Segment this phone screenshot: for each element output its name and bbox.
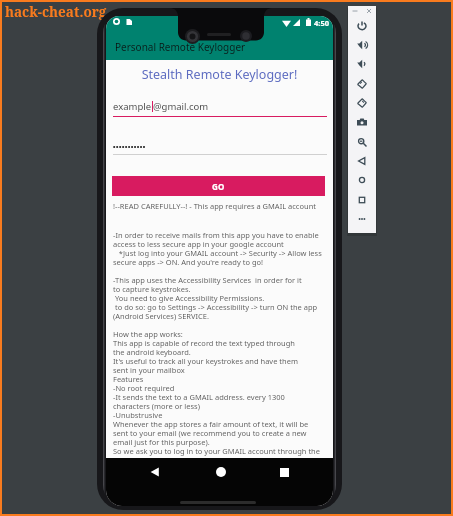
button[interactable]: Overview [348, 190, 376, 209]
staticText: @gmail.com [153, 100, 209, 113]
staticText: example [113, 100, 152, 113]
button[interactable]: Power [348, 16, 376, 35]
button[interactable]: Back [142, 459, 168, 485]
button[interactable]: example [113, 100, 327, 120]
button[interactable]: Recent apps [271, 459, 297, 485]
button[interactable]: Home [348, 170, 376, 189]
button[interactable]: Minimize [352, 8, 358, 14]
button[interactable]: More [348, 209, 376, 228]
button[interactable]: Personal Remote Keylogger [115, 40, 246, 54]
staticText: 4:50 [314, 18, 329, 28]
button[interactable]: Volume up [348, 35, 376, 54]
staticText: !--READ CAREFULLY--! - This app requires… [113, 201, 331, 211]
button[interactable]: GO [112, 176, 325, 196]
staticText: GO [212, 181, 225, 192]
button[interactable] [113, 139, 327, 159]
button[interactable]: Home [208, 459, 234, 485]
button[interactable]: Volume down [348, 54, 376, 73]
button[interactable]: Rotate right [348, 93, 376, 112]
button[interactable]: Back [348, 151, 376, 170]
staticText: Stealth Remote Keylogger! [106, 66, 333, 83]
button[interactable]: Screenshot [348, 112, 376, 131]
staticText: hack-cheat.org [5, 3, 107, 21]
button[interactable]: Rotate left [348, 74, 376, 93]
button[interactable]: Zoom [348, 132, 376, 151]
staticText: -In order to receive mails from this app… [113, 230, 331, 465]
button[interactable]: Close [366, 8, 372, 14]
